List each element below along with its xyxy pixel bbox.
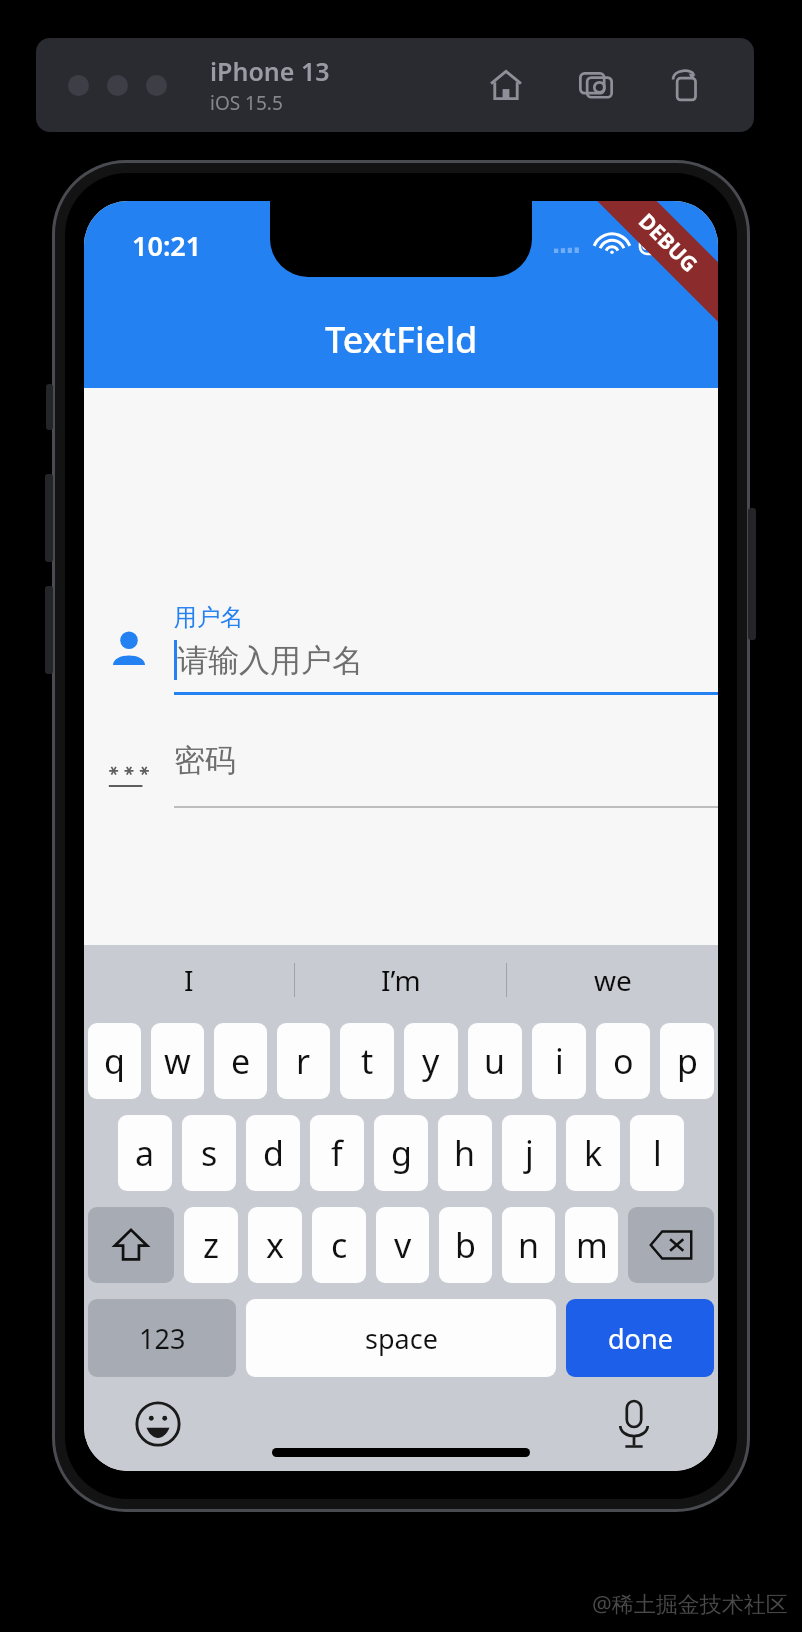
button[interactable]: m [565, 1207, 618, 1283]
staticText: r [296, 1038, 311, 1084]
staticText: m [576, 1222, 608, 1268]
staticText: g [391, 1130, 412, 1176]
button[interactable]: n [502, 1207, 555, 1283]
button[interactable]: 123 [88, 1299, 236, 1377]
button[interactable]: d [246, 1115, 300, 1191]
button[interactable]: z [184, 1207, 238, 1283]
button[interactable]: Emoji [130, 1396, 186, 1452]
staticText: 用户名 [174, 603, 243, 632]
staticText: DEBUG [632, 207, 704, 279]
button[interactable]: p [660, 1023, 714, 1099]
staticText: t [361, 1038, 374, 1084]
staticText: l [653, 1130, 662, 1176]
staticText: done [608, 1320, 673, 1357]
button[interactable]: Backspace [628, 1207, 714, 1283]
button[interactable]: g [374, 1115, 428, 1191]
button[interactable]: w [151, 1023, 204, 1099]
staticText: s [201, 1130, 218, 1176]
staticText: 10:21 [132, 227, 202, 264]
staticText: p [677, 1038, 698, 1084]
staticText: z [203, 1222, 219, 1268]
button[interactable]: q [88, 1023, 141, 1099]
button[interactable]: l [630, 1115, 684, 1191]
staticText: I’m [381, 961, 421, 999]
button[interactable]: h [438, 1115, 492, 1191]
staticText: h [454, 1130, 476, 1176]
staticText: c [331, 1222, 348, 1268]
staticText: n [518, 1222, 540, 1268]
staticText: y [422, 1038, 440, 1084]
button[interactable]: 用户名 [84, 594, 718, 704]
staticText: a [135, 1130, 155, 1176]
button[interactable]: e [214, 1023, 267, 1099]
staticText: j [525, 1130, 534, 1176]
staticText: iOS 15.5 [210, 90, 283, 116]
staticText: o [613, 1038, 634, 1084]
button[interactable]: Rotate [666, 65, 706, 105]
staticText: d [263, 1130, 284, 1176]
staticText: u [484, 1038, 506, 1084]
staticText: 密码 [174, 741, 236, 780]
staticText: f [331, 1130, 343, 1176]
button[interactable]: a [118, 1115, 172, 1191]
button[interactable]: Dictation [606, 1396, 662, 1452]
button[interactable]: Shift [88, 1207, 174, 1283]
button[interactable]: y [404, 1023, 458, 1099]
button[interactable]: space [246, 1299, 556, 1377]
button[interactable]: u [468, 1023, 522, 1099]
button[interactable]: r [277, 1023, 330, 1099]
button[interactable]: o [596, 1023, 650, 1099]
staticText: TextField [325, 315, 478, 364]
staticText: iPhone 13 [210, 54, 330, 88]
staticText: q [104, 1038, 125, 1084]
button[interactable]: k [566, 1115, 620, 1191]
staticText: e [231, 1038, 251, 1084]
button[interactable]: b [439, 1207, 492, 1283]
staticText: space [365, 1320, 438, 1357]
staticText: 123 [139, 1320, 186, 1357]
button[interactable]: t [340, 1023, 394, 1099]
button[interactable]: I [84, 945, 294, 1015]
button[interactable]: 密码 [84, 726, 718, 822]
button[interactable]: i [532, 1023, 586, 1099]
button[interactable]: Home [486, 65, 526, 105]
staticText: x [266, 1222, 284, 1268]
staticText: @稀土掘金技术社区 [592, 1588, 788, 1618]
button[interactable]: Screenshot [576, 65, 616, 105]
staticText: b [455, 1222, 476, 1268]
staticText: k [584, 1130, 603, 1176]
button[interactable]: j [502, 1115, 556, 1191]
button[interactable]: I’m [295, 945, 506, 1015]
staticText: we [594, 961, 632, 999]
staticText: i [555, 1038, 564, 1084]
button[interactable]: done [566, 1299, 714, 1377]
button[interactable]: we [507, 945, 718, 1015]
button[interactable]: f [310, 1115, 364, 1191]
staticText: I [184, 961, 194, 999]
staticText: 请输入用户名 [177, 641, 363, 680]
staticText: w [164, 1038, 191, 1084]
button[interactable]: x [248, 1207, 302, 1283]
button[interactable]: v [376, 1207, 429, 1283]
button[interactable]: c [312, 1207, 366, 1283]
staticText: v [394, 1222, 412, 1268]
button[interactable]: s [182, 1115, 236, 1191]
